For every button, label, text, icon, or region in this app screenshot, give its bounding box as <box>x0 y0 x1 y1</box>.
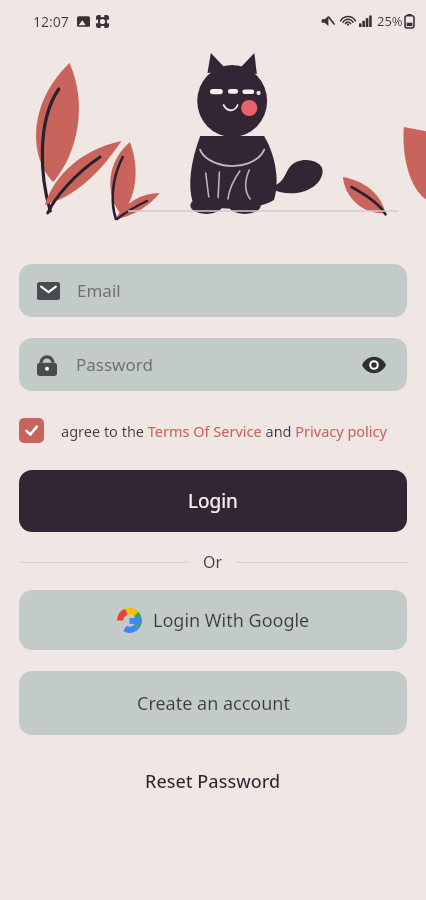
staticText: Login With Google <box>153 608 310 633</box>
staticText: agree to the Terms Of Service and Privac… <box>61 421 387 441</box>
staticText: 25% <box>377 12 403 30</box>
staticText: Reset Password <box>145 769 281 794</box>
staticText: Create an account <box>137 691 290 716</box>
button[interactable]: Show password <box>357 348 391 382</box>
button[interactable]: Login With Google <box>19 590 407 650</box>
staticText: Email <box>77 279 121 302</box>
staticText: Password <box>76 353 357 376</box>
button[interactable]: Password <box>19 338 407 391</box>
staticText: Login <box>188 488 238 514</box>
button[interactable]: Email <box>19 264 407 317</box>
button[interactable]: Reset Password <box>131 763 295 800</box>
button[interactable]: Login <box>19 470 407 532</box>
button[interactable]: agree to the Terms Of Service and Privac… <box>19 418 407 443</box>
staticText: Or <box>203 551 223 573</box>
button[interactable]: Create an account <box>19 671 407 735</box>
staticText: 12:07 <box>33 12 69 31</box>
